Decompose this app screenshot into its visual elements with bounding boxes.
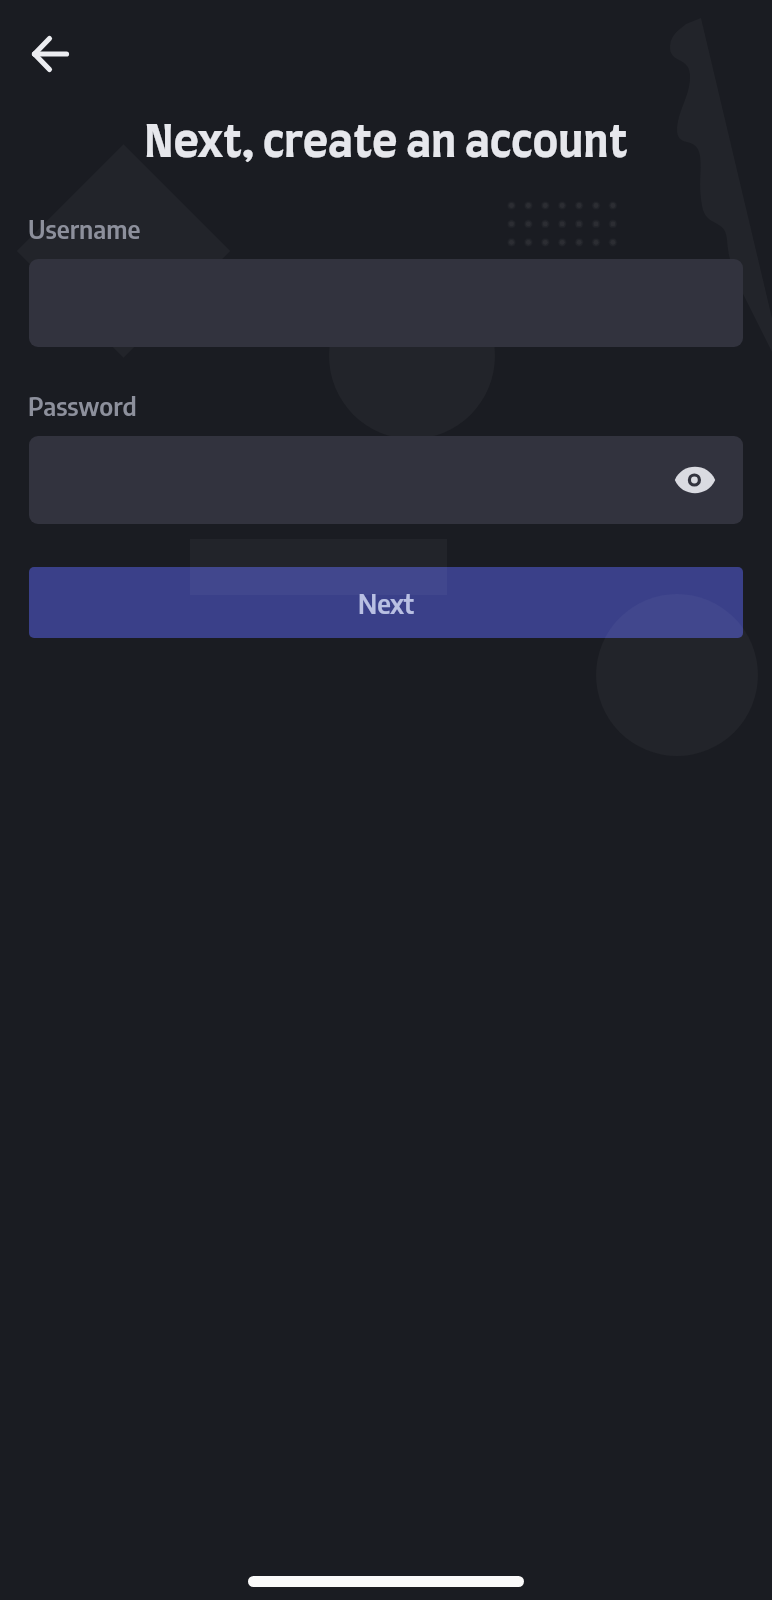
staticText: Username: [28, 213, 141, 245]
button[interactable]: Next: [29, 567, 743, 638]
staticText: Next, create an account: [0, 122, 772, 1600]
staticText: Password: [28, 390, 137, 422]
staticText: Next: [358, 586, 414, 620]
button[interactable]: Back: [18, 22, 82, 86]
button[interactable]: Show password: [666, 451, 724, 509]
button[interactable]: Show password: [29, 436, 743, 524]
